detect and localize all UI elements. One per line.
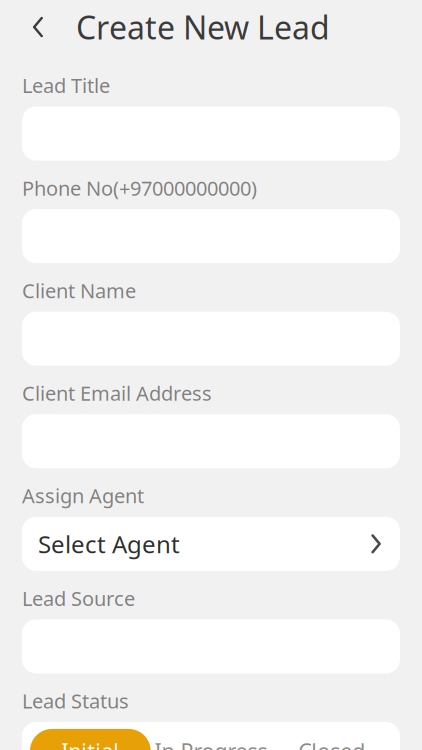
staticText: In Progress [154,737,267,750]
staticText: Phone No(+97000000000) [22,175,257,201]
staticText: Lead Status [22,687,129,714]
staticText: Closed [298,737,365,750]
staticText: Lead Source [22,585,135,611]
button[interactable]: Closed [271,729,392,750]
staticText: Create New Lead [76,6,330,48]
button[interactable]: Initial [30,729,151,750]
staticText: Select Agent [38,528,180,560]
button[interactable]: In Progress [151,729,271,750]
staticText: Lead Title [22,72,110,99]
staticText: Client Email Address [22,380,212,406]
staticText: Assign Agent [22,482,144,509]
button[interactable]: Back [16,5,60,49]
button[interactable]: Select Agent [22,517,400,571]
staticText: Client Name [22,277,136,304]
staticText: Initial [61,737,119,750]
